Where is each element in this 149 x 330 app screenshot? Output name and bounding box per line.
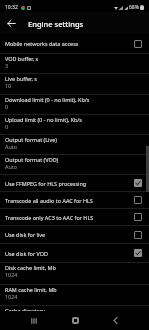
button[interactable]: Output format (VOD)	[0, 155, 149, 175]
staticText: Use disk for live	[5, 231, 134, 238]
button[interactable]: Cache directory	[0, 306, 149, 311]
staticText: Auto	[5, 143, 18, 150]
staticText: Transcode only AC3 to AAC for HLS	[5, 214, 134, 221]
button[interactable]: Mobile networks data access	[0, 34, 149, 54]
button[interactable]: Transcode all audio to AAC for HLS	[0, 192, 149, 209]
staticText: 0	[5, 103, 9, 110]
button[interactable]: Navigate up	[0, 12, 22, 34]
staticText: 68%	[129, 4, 139, 11]
button[interactable]: Back	[103, 311, 127, 330]
button[interactable]: VOD buffer, s	[0, 54, 149, 74]
button[interactable]: Recent apps	[22, 311, 46, 330]
staticText: 10:32	[5, 4, 18, 11]
staticText: 0	[5, 123, 9, 130]
button[interactable]: Upload limit (0 - no limit), Kb/s	[0, 115, 149, 135]
staticText: Transcode all audio to AAC for HLS	[5, 197, 134, 204]
staticText: Mobile networks data access	[5, 40, 134, 47]
staticText: Cache directory	[5, 307, 45, 311]
staticText: Download limit (0 - no limit), Kb/s	[5, 96, 90, 103]
button[interactable]: Download limit (0 - no limit), Kb/s	[0, 95, 149, 115]
staticText: Live buffer, s	[5, 75, 37, 82]
button[interactable]: Use FFMPEG for HLS processing	[0, 175, 149, 192]
staticText: RAM cache limit, Mb	[5, 286, 57, 293]
button[interactable]: Home	[63, 311, 87, 330]
button[interactable]: Use disk for live	[0, 226, 149, 244]
staticText: Use FFMPEG for HLS processing	[5, 180, 134, 187]
staticText: Upload limit (0 - no limit), Kb/s	[5, 116, 82, 123]
button[interactable]: Live buffer, s	[0, 74, 149, 95]
staticText: 10	[5, 82, 12, 89]
staticText: 1024	[5, 293, 18, 300]
button[interactable]: Output format (Live)	[0, 135, 149, 155]
staticText: Use disk for VOD	[5, 250, 134, 257]
staticText: Auto	[5, 163, 18, 170]
staticText: Output format (VOD)	[5, 156, 59, 163]
staticText: Output format (Live)	[5, 136, 57, 143]
staticText: Disk cache limit, Mb	[5, 264, 56, 271]
staticText: 3	[5, 62, 9, 69]
button[interactable]: Use disk for VOD	[0, 244, 149, 263]
staticText: 1024	[5, 271, 18, 278]
staticText: VOD buffer, s	[5, 55, 39, 62]
button[interactable]: RAM cache limit, Mb	[0, 285, 149, 306]
button[interactable]: Disk cache limit, Mb	[0, 263, 149, 285]
button[interactable]: Transcode only AC3 to AAC for HLS	[0, 209, 149, 226]
staticText: Engine settings	[28, 19, 84, 29]
